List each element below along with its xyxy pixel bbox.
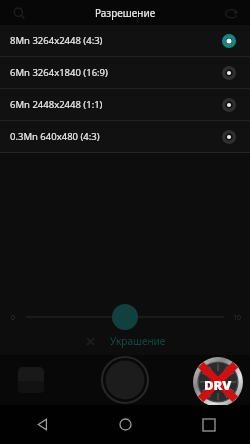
- button[interactable]: 0.3Mn 640x480 (4:3): [0, 121, 250, 152]
- staticText: 10: [233, 313, 242, 323]
- button[interactable]: 8Mn 3264x2448 (4:3): [0, 25, 250, 56]
- button[interactable]: DRV: [192, 357, 244, 407]
- staticText: Украшение: [110, 334, 166, 348]
- staticText: 0.3Mn 640x480 (4:3): [10, 130, 100, 143]
- button[interactable]: 6Mn 2448x2448 (1:1): [0, 89, 250, 120]
- button[interactable]: Rotate: [220, 2, 242, 24]
- staticText: 6Mn 3264x1840 (16:9): [10, 66, 108, 79]
- button[interactable]: Gallery: [18, 367, 44, 393]
- button[interactable]: Украшение: [85, 334, 166, 348]
- button[interactable]: 6Mn 3264x1840 (16:9): [0, 57, 250, 88]
- button[interactable]: Home: [84, 405, 167, 444]
- staticText: 8Mn 3264x2448 (4:3): [10, 34, 103, 47]
- staticText: Разрешение: [95, 6, 156, 20]
- staticText: 6Mn 2448x2448 (1:1): [10, 98, 103, 111]
- staticText: DRV: [204, 376, 232, 394]
- button[interactable]: Recents: [167, 405, 250, 444]
- button[interactable]: Back: [0, 405, 84, 444]
- button[interactable]: Beauty level: [112, 304, 138, 330]
- button[interactable]: Shutter: [101, 356, 149, 404]
- staticText: 0: [11, 313, 16, 323]
- button[interactable]: Search: [8, 2, 30, 24]
